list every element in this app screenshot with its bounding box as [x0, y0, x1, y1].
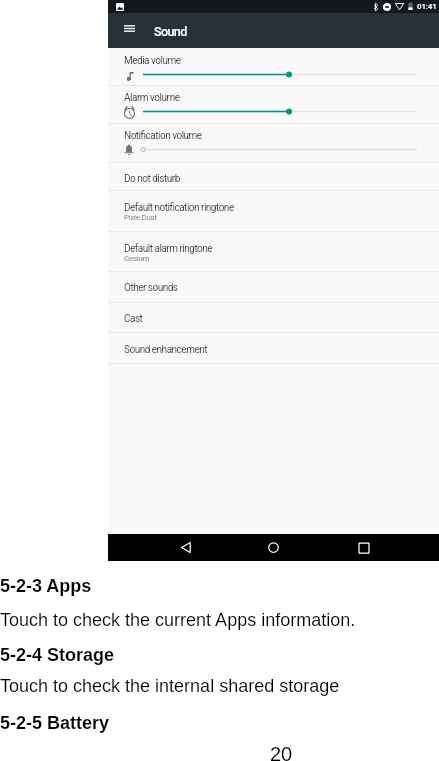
staticText: 5-2-3 Apps	[0, 576, 92, 596]
button[interactable]: Cast	[108, 302, 439, 332]
button[interactable]: Sound enhancement	[108, 332, 439, 363]
button[interactable]: Notification volume	[108, 123, 439, 161]
button[interactable]: Back	[172, 534, 199, 561]
staticText: Default notification ringtone	[124, 202, 234, 214]
staticText: Pixie Dust	[124, 213, 157, 222]
staticText: 20	[270, 743, 293, 761]
button[interactable]: Home	[260, 534, 287, 561]
staticText: Cast	[124, 313, 143, 325]
staticText: Default alarm ringtone	[124, 243, 213, 255]
staticText: Media volume	[124, 55, 181, 67]
button[interactable]: Open navigation drawer	[116, 15, 142, 41]
staticText: Touch to check the current Apps informat…	[0, 610, 356, 630]
staticText: Sound	[154, 24, 187, 39]
staticText: Do not disturb	[124, 173, 180, 185]
button[interactable]: Default alarm ringtone	[108, 231, 439, 271]
button[interactable]: Media volume	[108, 48, 439, 86]
staticText: Sound enhancement	[124, 344, 207, 356]
button[interactable]: Other sounds	[108, 271, 439, 301]
staticText: Other sounds	[124, 282, 178, 294]
staticText: Notification volume	[124, 130, 202, 142]
button[interactable]: Default notification ringtone	[108, 190, 439, 231]
button[interactable]: Recent apps	[350, 534, 377, 561]
button[interactable]: Do not disturb	[108, 162, 439, 191]
staticText: 5-2-4 Storage	[0, 645, 115, 665]
button[interactable]: Alarm volume	[108, 85, 439, 123]
staticText: Touch to check the internal shared stora…	[0, 676, 340, 696]
staticText: Alarm volume	[124, 92, 180, 104]
staticText: Cesium	[124, 254, 150, 263]
staticText: 01:41	[417, 2, 437, 11]
staticText: 5-2-5 Battery	[0, 713, 110, 733]
